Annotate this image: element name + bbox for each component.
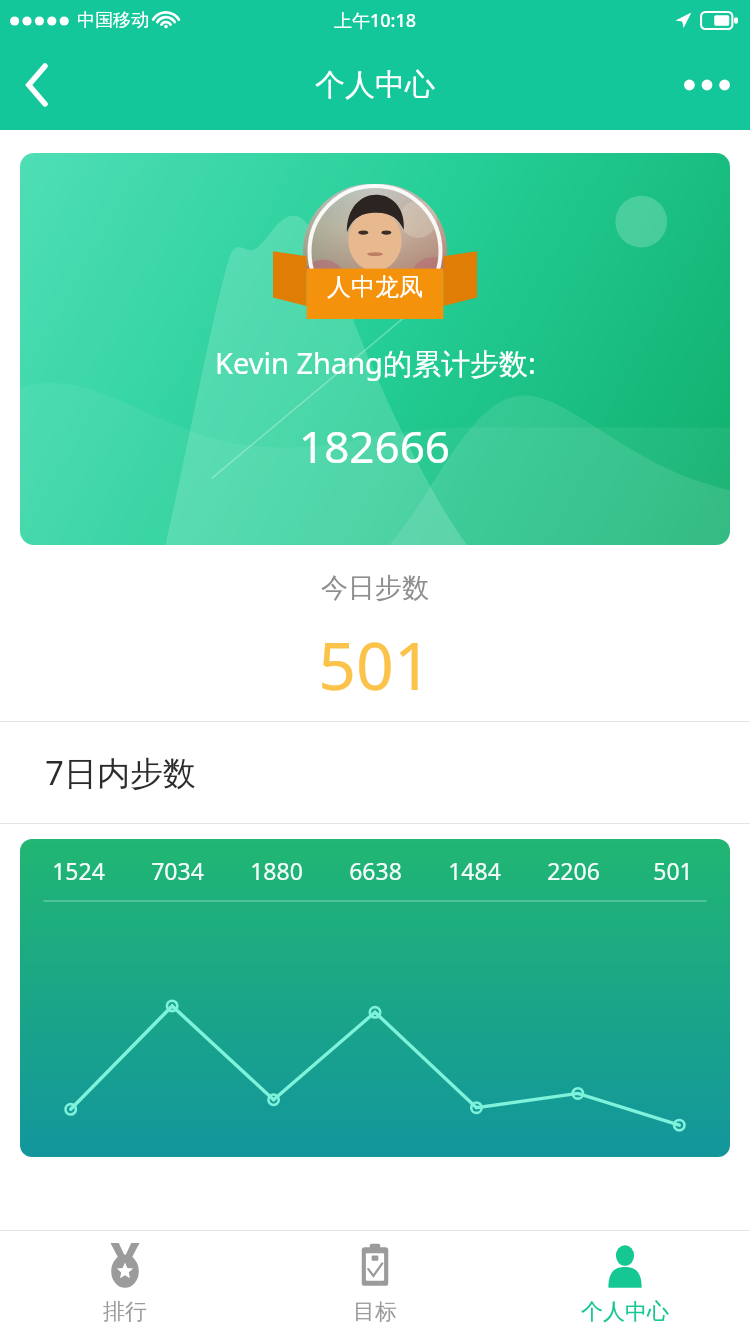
- staticText: 501: [318, 619, 432, 709]
- staticText: 个人中心: [581, 1298, 669, 1326]
- staticText: 上午10:18: [334, 8, 417, 33]
- button[interactable]: More options: [664, 47, 750, 123]
- staticText: 6638: [349, 855, 402, 886]
- staticText: 7034: [151, 855, 204, 886]
- staticText: 7日内步数: [45, 750, 196, 795]
- button[interactable]: 1524: [20, 839, 730, 1157]
- staticText: 2206: [547, 855, 600, 886]
- staticText: 今日步数: [321, 571, 429, 605]
- button[interactable]: 人中龙凤: [20, 153, 730, 545]
- staticText: 1484: [448, 855, 501, 886]
- staticText: 人中龙凤: [327, 272, 423, 302]
- staticText: 1880: [250, 855, 303, 886]
- staticText: 1524: [52, 855, 105, 886]
- staticText: 182666: [299, 416, 451, 476]
- staticText: 目标: [353, 1298, 397, 1326]
- staticText: Kevin Zhang的累计步数:: [215, 343, 536, 383]
- button[interactable]: 个人中心: [500, 1231, 750, 1334]
- button[interactable]: Back: [0, 47, 76, 123]
- staticText: 排行: [103, 1298, 147, 1326]
- button[interactable]: 目标: [250, 1231, 500, 1334]
- staticText: 中国移动: [77, 9, 149, 32]
- staticText: 个人中心: [315, 66, 435, 104]
- staticText: 501: [653, 855, 693, 886]
- button[interactable]: 排行: [0, 1231, 250, 1334]
